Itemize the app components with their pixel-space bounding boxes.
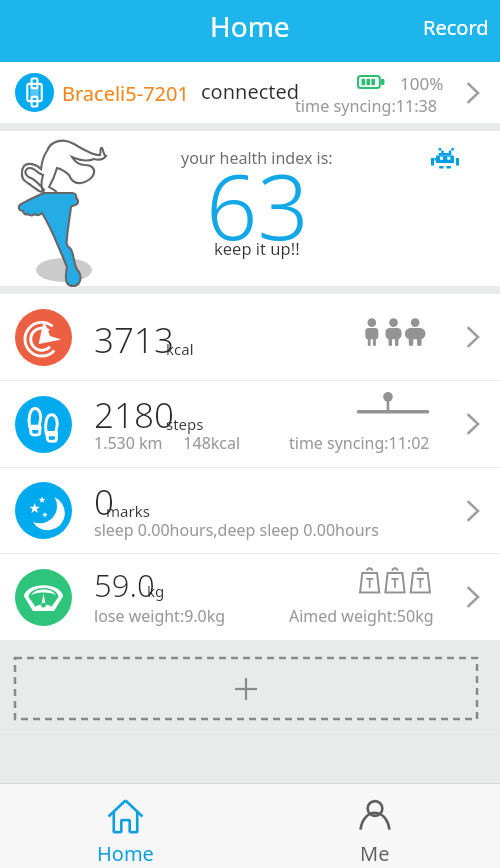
staticText: 59.0	[94, 564, 155, 606]
staticText: keep it up!!	[214, 237, 300, 259]
staticText: 1.530 km 148kcal	[94, 432, 241, 454]
button[interactable]: 3713	[0, 294, 500, 380]
button[interactable]: your health index is:	[0, 131, 500, 286]
staticText: Braceli5-7201	[62, 80, 189, 107]
staticText: Aimed weight:50kg	[289, 605, 434, 627]
staticText: 100%	[400, 72, 444, 95]
button[interactable]: Home	[0, 784, 250, 868]
staticText: Record	[423, 14, 489, 41]
button[interactable]: Me	[250, 784, 500, 868]
button[interactable]: 2180	[0, 381, 500, 467]
staticText: time syncing:11:02	[289, 432, 430, 454]
staticText: Home	[210, 7, 290, 45]
staticText: 63	[206, 144, 309, 267]
staticText: Home	[97, 840, 154, 867]
staticText: kg	[147, 581, 165, 601]
button[interactable]: Record	[403, 0, 500, 62]
staticText: sleep 0.00hours,deep sleep 0.00hours	[94, 519, 379, 541]
staticText: marks	[106, 501, 150, 521]
staticText: 3713	[94, 316, 174, 364]
button[interactable]: 59.0	[0, 554, 500, 640]
button[interactable]: Braceli5-7201	[0, 62, 500, 123]
staticText: time syncing:11:38	[295, 95, 438, 117]
button[interactable]: Add	[15, 658, 477, 719]
staticText: kcal	[166, 339, 194, 359]
button[interactable]: 0	[0, 468, 500, 553]
staticText: Me	[360, 840, 390, 867]
staticText: connected	[201, 78, 300, 105]
staticText: your health index is:	[181, 147, 333, 169]
staticText: steps	[166, 414, 204, 434]
staticText: 2180	[94, 391, 174, 439]
staticText: 0	[94, 478, 114, 526]
staticText: lose weight:9.0kg	[94, 605, 226, 627]
